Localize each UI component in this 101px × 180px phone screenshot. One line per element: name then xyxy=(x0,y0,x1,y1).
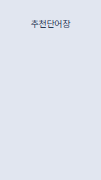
staticText: 추천단어장 xyxy=(30,17,70,29)
